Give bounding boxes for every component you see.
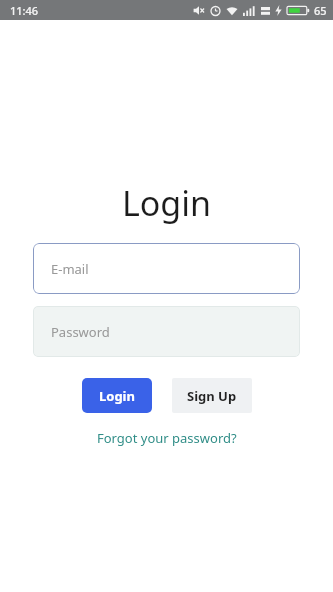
- staticText: 65: [314, 3, 327, 18]
- staticText: Password: [51, 323, 110, 341]
- button[interactable]: Password: [33, 306, 300, 357]
- staticText: Login: [0, 180, 333, 226]
- button[interactable]: Sign Up: [172, 378, 252, 413]
- staticText: Forgot your password?: [97, 429, 237, 447]
- button[interactable]: Forgot your password?: [91, 426, 243, 450]
- staticText: Login: [99, 387, 135, 405]
- button[interactable]: Login: [82, 378, 152, 413]
- staticText: E-mail: [51, 260, 89, 278]
- staticText: 11:46: [10, 3, 39, 18]
- staticText: Sign Up: [187, 387, 237, 405]
- button[interactable]: E-mail: [33, 243, 300, 294]
